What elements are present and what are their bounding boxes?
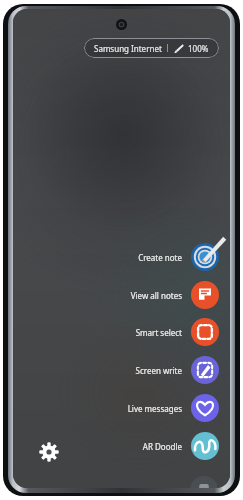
staticText: Live messages xyxy=(127,403,182,414)
staticText: Create note xyxy=(138,252,182,263)
button[interactable]: More xyxy=(190,476,218,488)
staticText: AR Doodle xyxy=(142,441,182,452)
staticText: Smart select xyxy=(135,327,182,338)
staticText: View all notes xyxy=(130,290,182,301)
button[interactable]: AR Doodle xyxy=(13,429,230,463)
staticText: Samsung Internet xyxy=(94,43,162,54)
button[interactable]: Samsung Internet xyxy=(84,38,219,58)
staticText: Screen write xyxy=(135,365,182,376)
other: S Pen xyxy=(173,43,184,54)
button[interactable]: Settings xyxy=(39,442,59,462)
staticText: 100% xyxy=(188,43,209,54)
button[interactable]: Screen write xyxy=(13,353,230,387)
button[interactable]: Smart select xyxy=(13,315,230,349)
button[interactable]: Create note xyxy=(13,240,230,274)
button[interactable]: View all notes xyxy=(13,278,230,312)
button[interactable]: Live messages xyxy=(13,391,230,425)
